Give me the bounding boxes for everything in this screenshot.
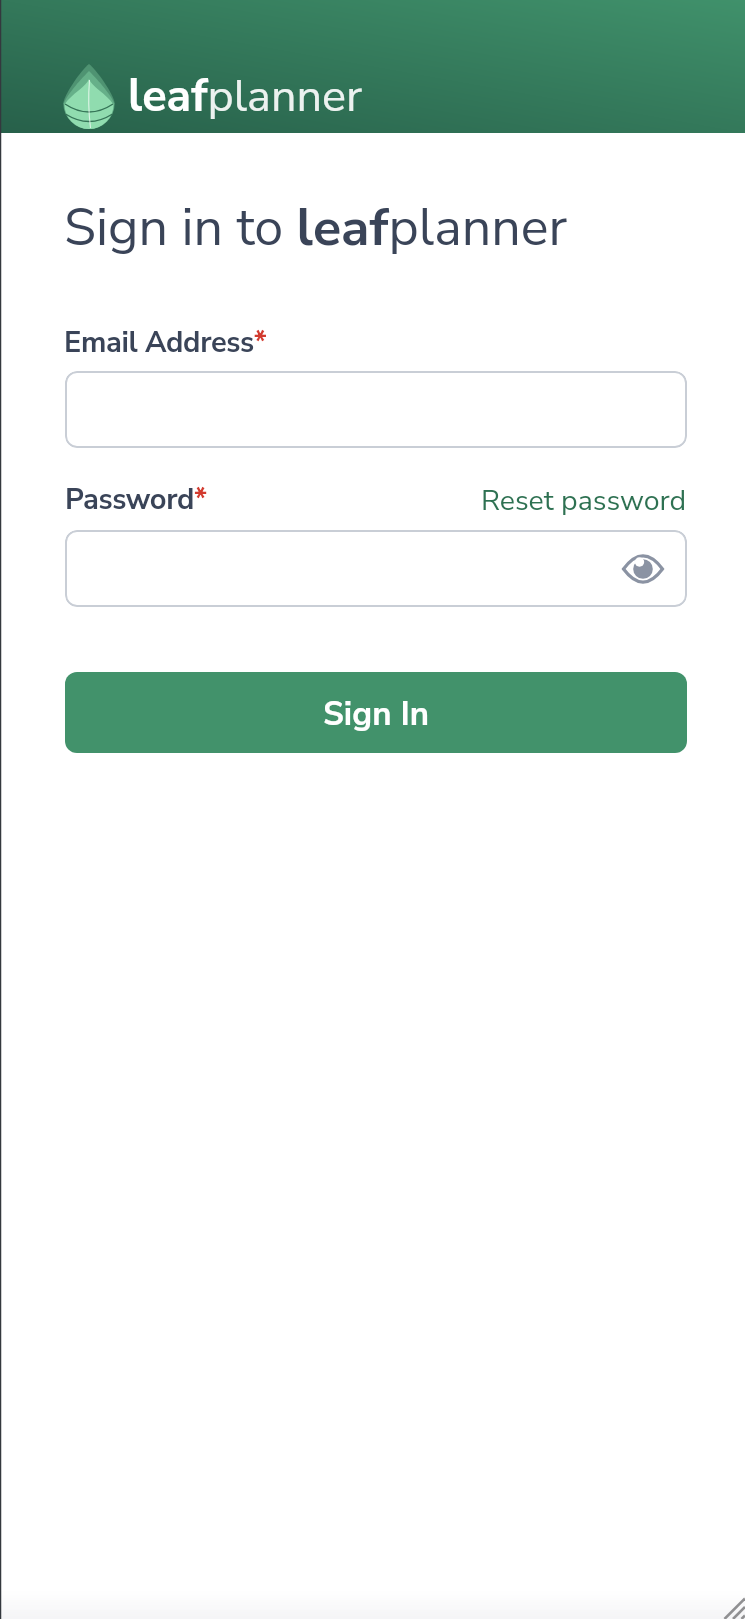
staticText: Sign in to leafplanner <box>64 192 568 263</box>
staticText: Password* <box>65 480 207 520</box>
staticText: Email Address* <box>64 323 267 363</box>
button[interactable]: Sign In <box>65 672 687 753</box>
button[interactable] <box>65 530 687 607</box>
staticText: Sign In <box>323 692 429 737</box>
staticText: leafplanner <box>128 66 363 127</box>
button[interactable] <box>65 371 687 448</box>
button[interactable]: Reset password <box>481 481 687 520</box>
